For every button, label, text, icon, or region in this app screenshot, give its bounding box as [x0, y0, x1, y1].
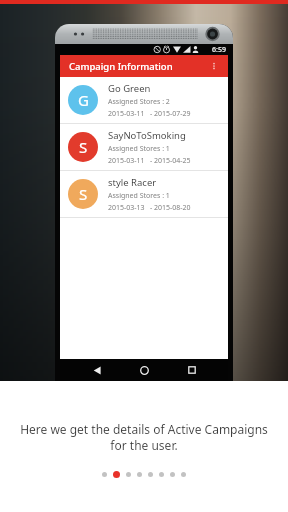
staticText: Assigned Stores : 1 — [108, 191, 170, 201]
staticText: SayNoToSmoking — [108, 129, 186, 142]
button[interactable]: G — [60, 77, 228, 124]
button[interactable]: More options — [206, 58, 222, 74]
button[interactable]: S — [60, 171, 228, 218]
staticText: S — [79, 137, 88, 157]
staticText: 6:59 — [212, 45, 226, 55]
button[interactable] — [181, 472, 186, 477]
button[interactable] — [159, 472, 164, 477]
button[interactable] — [170, 472, 175, 477]
staticText: Here we get the details of Active Campai… — [8, 421, 280, 454]
staticText: Assigned Stores : 1 — [108, 144, 170, 154]
staticText: Assigned Stores : 2 — [108, 97, 170, 107]
button[interactable] — [113, 471, 120, 478]
button[interactable]: Recents — [181, 359, 203, 381]
button[interactable] — [102, 472, 107, 477]
button[interactable]: S — [60, 124, 228, 171]
button[interactable] — [148, 472, 153, 477]
staticText: 2015-03-13 - 2015-08-20 — [108, 203, 191, 213]
staticText: G — [78, 90, 89, 110]
staticText: style Racer — [108, 176, 157, 189]
button[interactable]: Campaign Information — [60, 55, 228, 77]
staticText: 2015-03-11 - 2015-07-29 — [108, 109, 191, 119]
button[interactable]: Back — [86, 359, 108, 381]
staticText: S — [79, 184, 88, 204]
button[interactable]: Home — [133, 359, 155, 381]
staticText: Campaign Information — [69, 60, 173, 73]
staticText: Go Green — [108, 82, 151, 95]
button[interactable] — [137, 472, 142, 477]
staticText: 2015-03-11 - 2015-04-25 — [108, 156, 191, 166]
button[interactable] — [126, 472, 131, 477]
